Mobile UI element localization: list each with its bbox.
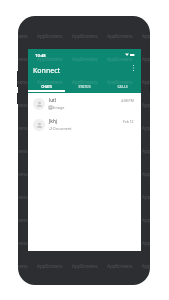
staticText: Image xyxy=(53,105,65,110)
staticText: AppScreens xyxy=(142,125,168,131)
staticText: AppScreens xyxy=(2,171,28,177)
staticText: AppScreens xyxy=(142,263,168,269)
staticText: AppScreens xyxy=(142,56,168,62)
staticText: AppScreens xyxy=(142,79,168,85)
staticText: AppScreens xyxy=(107,33,133,39)
staticText: CHATS xyxy=(41,84,52,89)
staticText: CALLS xyxy=(117,84,128,89)
staticText: STATUS xyxy=(78,84,91,89)
staticText: AppScreens xyxy=(37,125,63,131)
staticText: AppScreens xyxy=(107,79,133,85)
staticText: AppScreens xyxy=(2,194,28,200)
staticText: Konnect xyxy=(33,66,61,76)
staticText: AppScreens xyxy=(2,33,28,39)
staticText: AppScreens xyxy=(2,263,28,269)
staticText: AppScreens xyxy=(107,263,133,269)
button[interactable]: Jkhj xyxy=(28,114,141,135)
button[interactable]: lutl xyxy=(28,93,141,114)
staticText: AppScreens xyxy=(37,263,63,269)
staticText: 4:48 PM xyxy=(121,98,134,103)
staticText: Feb 12 xyxy=(123,119,134,124)
staticText: AppScreens xyxy=(142,148,168,154)
staticText: AppScreens xyxy=(142,33,168,39)
staticText: AppScreens xyxy=(37,102,63,108)
button[interactable]: STATUS xyxy=(65,80,103,93)
staticText: AppScreens xyxy=(2,102,28,108)
staticText: AppScreens xyxy=(142,102,168,108)
staticText: AppScreens xyxy=(107,56,133,62)
staticText: 10:48 xyxy=(35,53,46,59)
staticText: lutl xyxy=(49,97,57,103)
staticText: AppScreens xyxy=(2,148,28,154)
staticText: AppScreens xyxy=(37,56,63,62)
staticText: AppScreens xyxy=(2,56,28,62)
staticText: AppScreens xyxy=(72,263,98,269)
button[interactable]: CALLS xyxy=(103,80,141,93)
staticText: AppScreens xyxy=(72,79,98,85)
staticText: AppScreens xyxy=(72,56,98,62)
staticText: Jkhj xyxy=(49,118,58,124)
button[interactable]: More options xyxy=(127,62,139,74)
staticText: AppScreens xyxy=(2,217,28,223)
staticText: AppScreens xyxy=(72,33,98,39)
staticText: Document xyxy=(53,126,72,131)
staticText: AppScreens xyxy=(142,171,168,177)
staticText: AppScreens xyxy=(2,125,28,131)
staticText: AppScreens xyxy=(142,240,168,246)
staticText: AppScreens xyxy=(142,217,168,223)
staticText: AppScreens xyxy=(37,33,63,39)
button[interactable]: CHATS xyxy=(28,80,65,93)
staticText: AppScreens xyxy=(37,79,63,85)
staticText: AppScreens xyxy=(2,240,28,246)
staticText: AppScreens xyxy=(142,194,168,200)
staticText: AppScreens xyxy=(2,79,28,85)
